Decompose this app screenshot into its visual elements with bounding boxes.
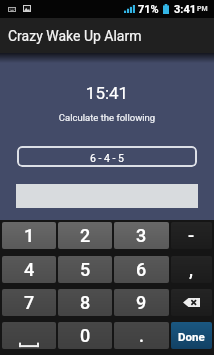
other: Backspace	[183, 298, 200, 307]
button[interactable]: ,	[171, 256, 212, 283]
staticText: 3	[136, 225, 147, 246]
staticText: 2	[80, 225, 91, 246]
staticText: Done	[178, 330, 205, 343]
button[interactable]: Done	[171, 322, 212, 349]
button[interactable]: .	[114, 322, 169, 349]
button[interactable]: 7	[2, 289, 56, 316]
button[interactable]: Backspace	[171, 289, 212, 316]
staticText: PM	[197, 5, 208, 13]
button[interactable]: 4	[2, 256, 56, 283]
other: Space	[2, 322, 56, 349]
staticText: 4	[24, 259, 35, 280]
other: Keyboard active	[8, 7, 16, 12]
button[interactable]: -	[171, 222, 212, 249]
button[interactable]: 3	[114, 222, 169, 249]
staticText: -	[188, 225, 195, 246]
staticText: Crazy Wake Up Alarm	[8, 28, 142, 44]
staticText: 3:41	[174, 3, 197, 16]
staticText: 71%	[138, 3, 159, 16]
staticText: .	[139, 325, 145, 346]
staticText: 1	[24, 225, 35, 246]
button[interactable]: Crazy Wake Up Alarm	[0, 18, 214, 53]
other: Screenshot captured	[23, 5, 31, 12]
button[interactable]: 0	[58, 322, 112, 349]
staticText: 7	[24, 292, 35, 313]
button[interactable]: 2	[58, 222, 112, 249]
staticText: 8	[80, 292, 91, 313]
staticText: 6 - 4 - 5	[90, 152, 124, 164]
staticText: ,	[189, 259, 194, 280]
staticText: 5	[80, 259, 91, 280]
staticText: 0	[80, 325, 91, 346]
staticText: 6	[136, 259, 147, 280]
staticText: 9	[136, 292, 147, 313]
button[interactable]: 6 - 4 - 5	[17, 146, 197, 167]
staticText: 15:41	[0, 83, 214, 103]
button[interactable]: 6	[114, 256, 169, 283]
button[interactable]: 5	[58, 256, 112, 283]
button[interactable]: 1	[2, 222, 56, 249]
button[interactable]: 9	[114, 289, 169, 316]
button[interactable]: 8	[58, 289, 112, 316]
button[interactable]: Space	[2, 322, 56, 349]
staticText: Calculate the following	[0, 112, 214, 123]
